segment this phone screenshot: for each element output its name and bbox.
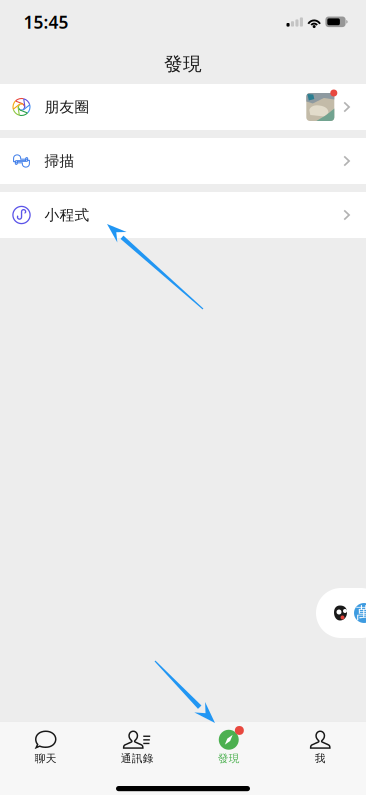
button[interactable]: 通訊錄 bbox=[91, 721, 183, 766]
button[interactable]: Mini program floating window bbox=[316, 588, 366, 638]
staticText: 萬 bbox=[356, 603, 366, 623]
staticText: 通訊錄 bbox=[121, 752, 154, 765]
staticText: 小程式 bbox=[44, 206, 89, 224]
button[interactable]: 發現 bbox=[0, 44, 366, 84]
button[interactable]: 朋友圈 bbox=[0, 84, 366, 130]
staticText: 發現 bbox=[164, 52, 202, 75]
staticText: 我 bbox=[315, 752, 326, 765]
staticText: 朋友圈 bbox=[44, 98, 89, 116]
button[interactable]: 小程式 bbox=[0, 192, 366, 238]
button[interactable]: 發現 bbox=[183, 721, 274, 766]
staticText: 聊天 bbox=[35, 752, 57, 765]
staticText: 發現 bbox=[218, 752, 240, 765]
button[interactable]: 掃描 bbox=[0, 138, 366, 184]
button[interactable]: 聊天 bbox=[0, 721, 91, 766]
staticText: 15:45 bbox=[23, 10, 68, 33]
button[interactable]: 我 bbox=[274, 721, 366, 766]
staticText: 掃描 bbox=[44, 152, 74, 170]
